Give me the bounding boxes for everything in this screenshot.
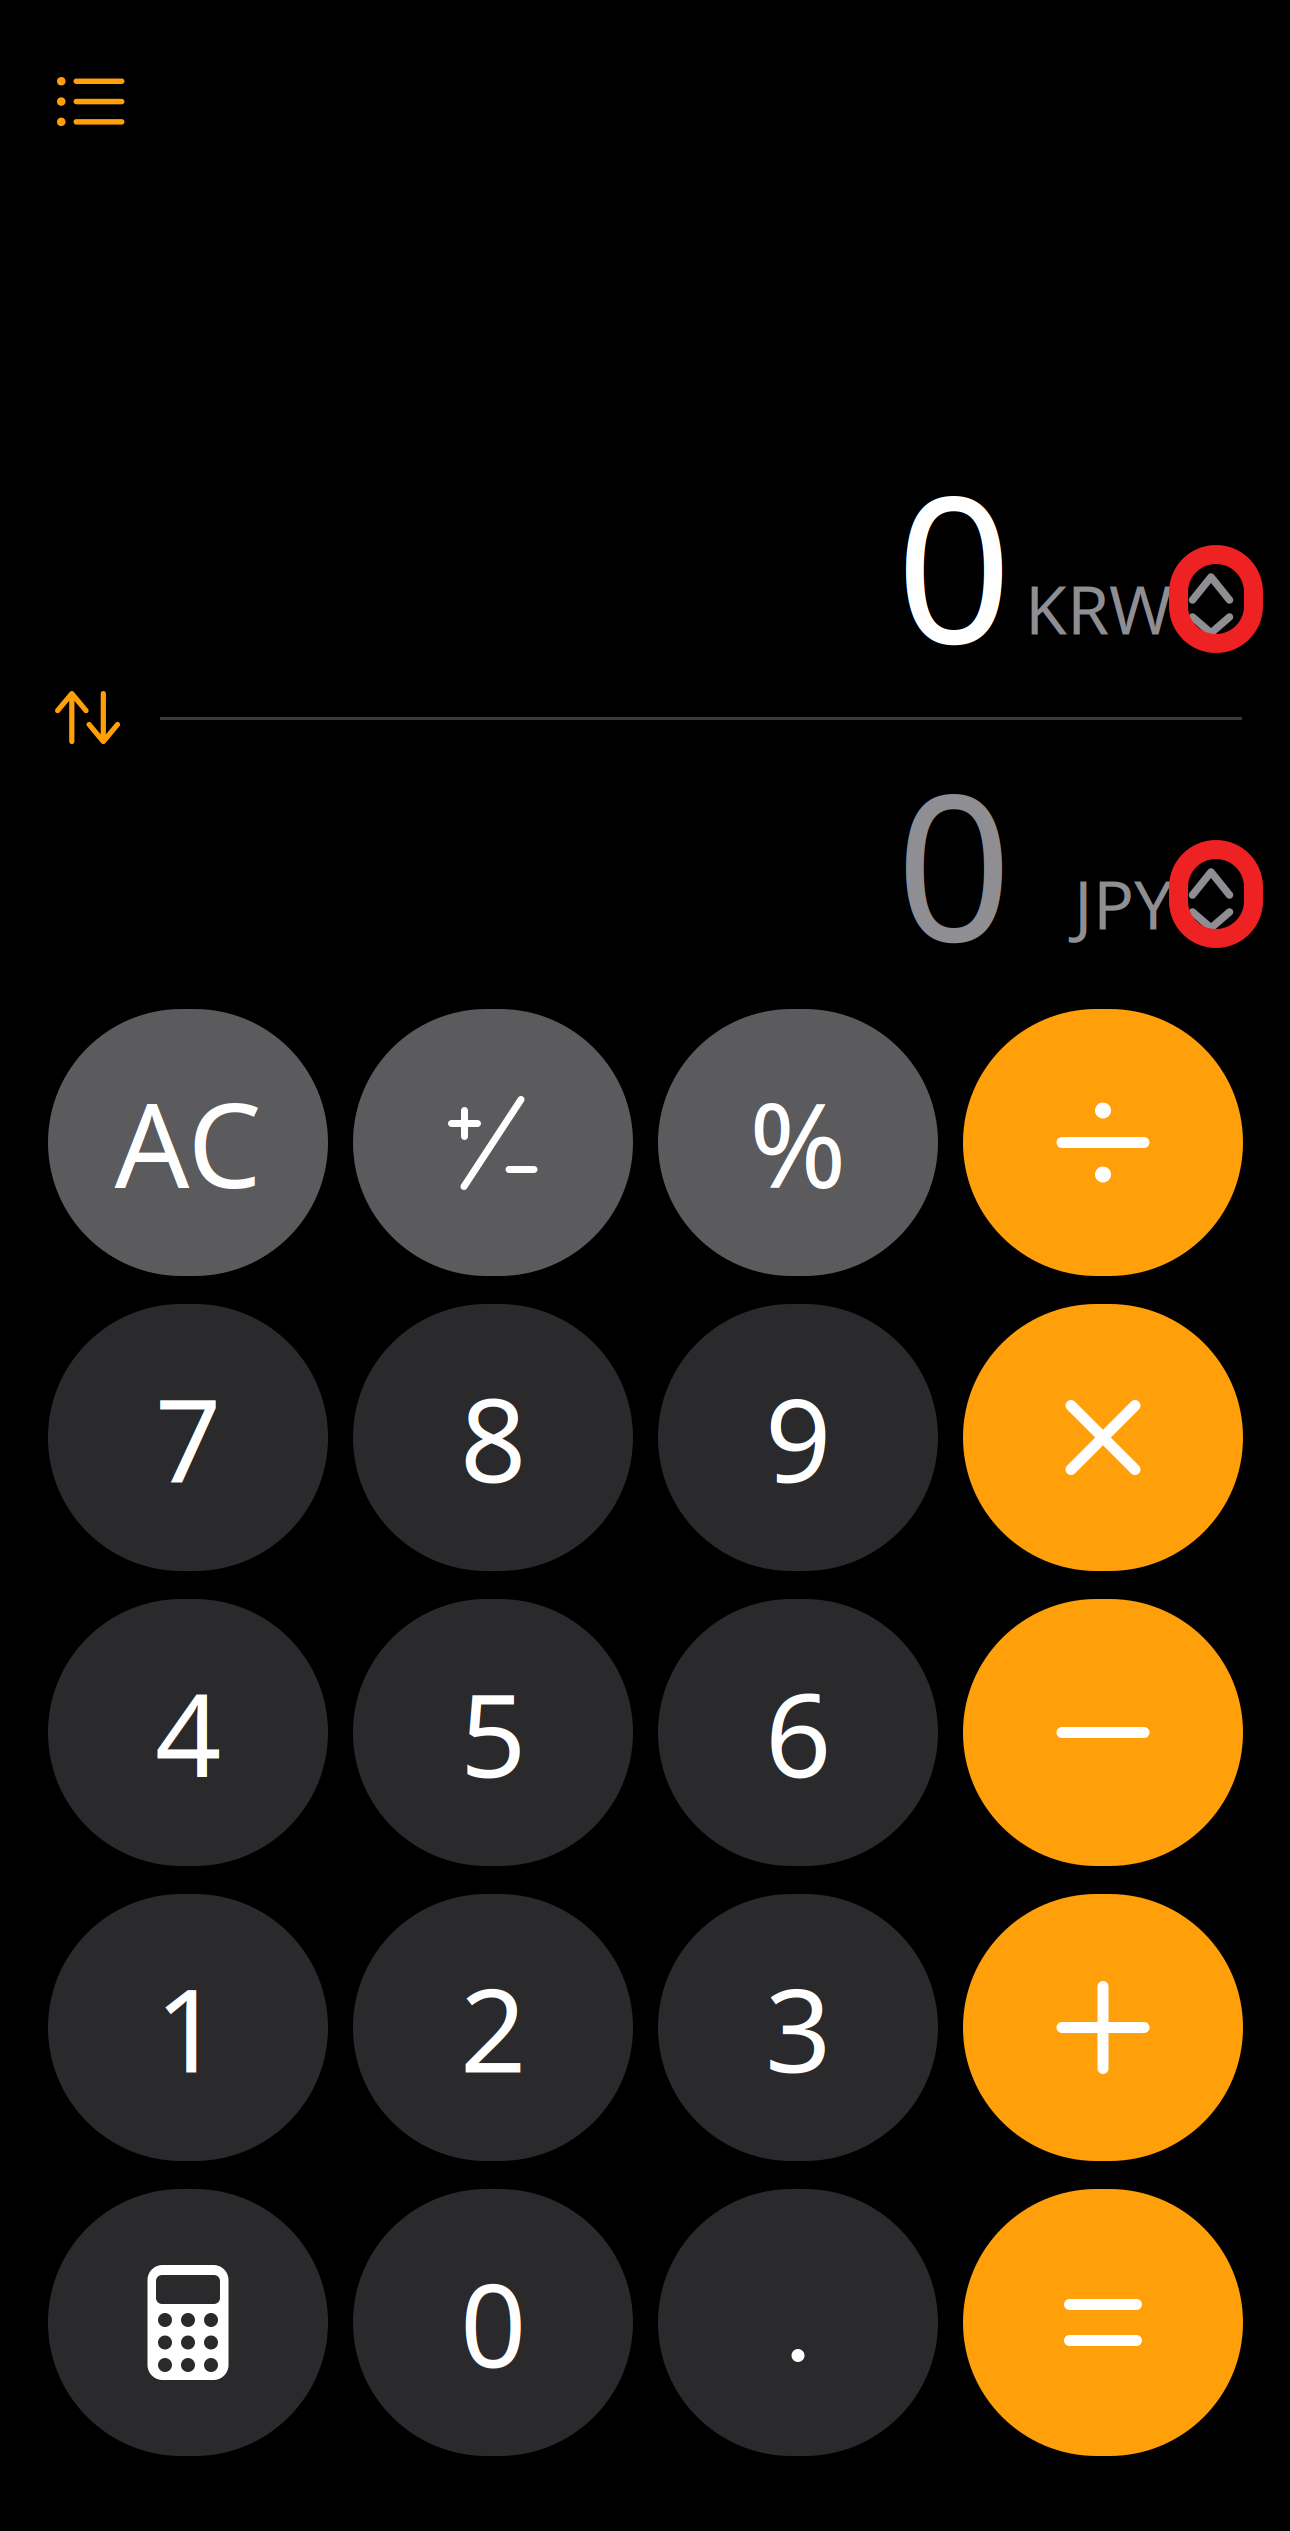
staticText: 0 — [896, 728, 1012, 997]
staticText: 8 — [460, 1360, 526, 1514]
button[interactable]: Plus minus — [353, 1009, 633, 1276]
staticText: 0 — [896, 430, 1012, 699]
staticText: 1 — [155, 1950, 221, 2104]
staticText: AC — [114, 1065, 261, 1220]
button[interactable]: Decimal point — [658, 2189, 938, 2456]
button[interactable]: 5 — [353, 1599, 633, 1866]
staticText: 9 — [765, 1360, 831, 1514]
staticText: 5 — [460, 1655, 526, 1809]
button[interactable]: 3 — [658, 1894, 938, 2161]
button[interactable]: 1 — [48, 1894, 328, 2161]
staticText: KRW — [1025, 563, 1172, 653]
button[interactable]: Equals — [963, 2189, 1243, 2456]
staticText: 2 — [460, 1950, 526, 2104]
button[interactable]: Currency list — [35, 55, 147, 148]
button[interactable]: 0 — [353, 2189, 633, 2456]
staticText: JPY — [1074, 858, 1172, 948]
button[interactable]: 8 — [353, 1304, 633, 1571]
button[interactable]: 6 — [658, 1599, 938, 1866]
button[interactable]: Calculator — [48, 2189, 328, 2456]
button[interactable]: 4 — [48, 1599, 328, 1866]
button[interactable]: Change JPY currency — [1169, 840, 1263, 948]
button[interactable]: Swap currencies — [35, 671, 140, 764]
staticText: 6 — [765, 1655, 831, 1809]
button[interactable]: Add — [963, 1894, 1243, 2161]
staticText: % — [749, 1065, 847, 1220]
button[interactable]: 7 — [48, 1304, 328, 1571]
staticText: 0 — [460, 2245, 526, 2399]
button[interactable]: % — [658, 1009, 938, 1276]
button[interactable]: Divide — [963, 1009, 1243, 1276]
staticText: 4 — [155, 1655, 221, 1809]
staticText: 7 — [155, 1360, 221, 1514]
button[interactable]: 2 — [353, 1894, 633, 2161]
button[interactable]: Change KRW currency — [1169, 545, 1263, 653]
button[interactable]: Subtract — [963, 1599, 1243, 1866]
staticText: 3 — [765, 1950, 831, 2104]
button[interactable]: 9 — [658, 1304, 938, 1571]
button[interactable]: Multiply — [963, 1304, 1243, 1571]
button[interactable]: AC — [48, 1009, 328, 1276]
